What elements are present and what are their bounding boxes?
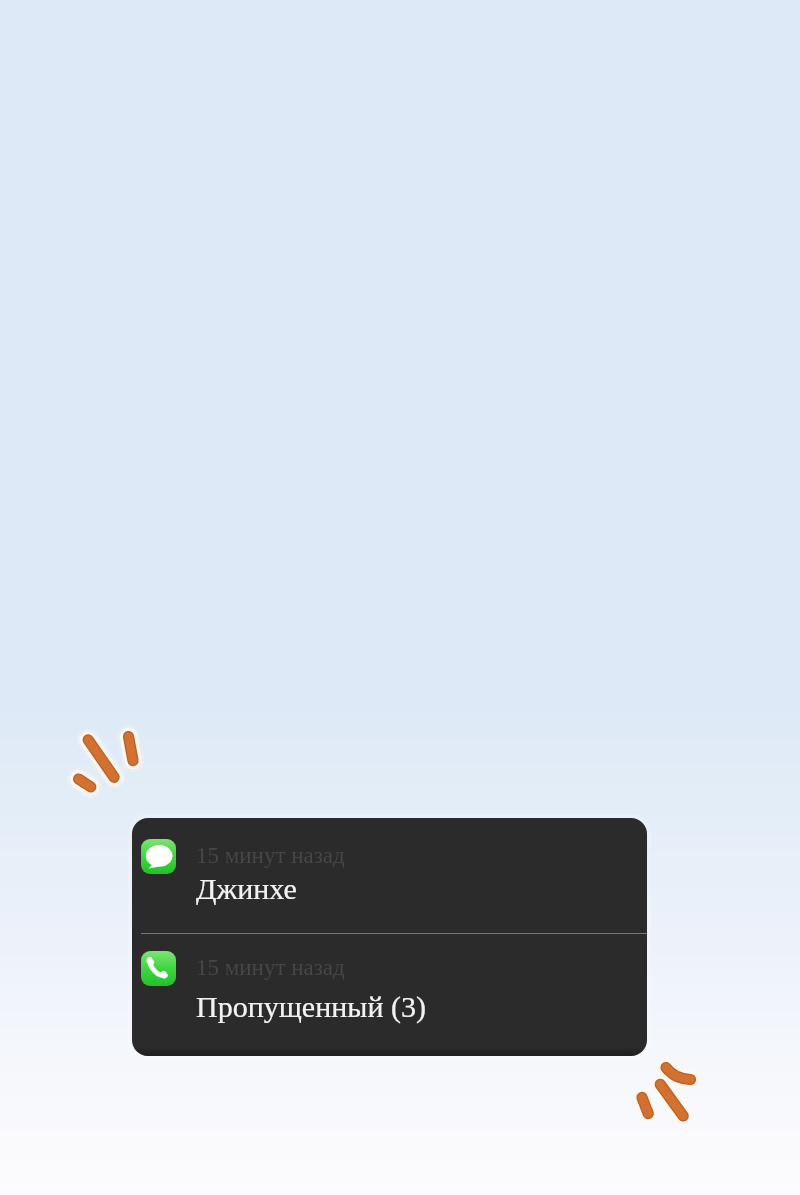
staticText: 15 минут назад xyxy=(196,843,345,868)
other: Phone xyxy=(141,951,176,986)
staticText: Джинхе xyxy=(196,872,297,905)
button[interactable]: Messages xyxy=(132,818,647,933)
staticText: Пропущенный (3) xyxy=(196,990,426,1023)
button[interactable]: Phone xyxy=(132,934,647,1056)
other: Messages xyxy=(141,839,176,874)
staticText: 15 минут назад xyxy=(196,955,345,980)
